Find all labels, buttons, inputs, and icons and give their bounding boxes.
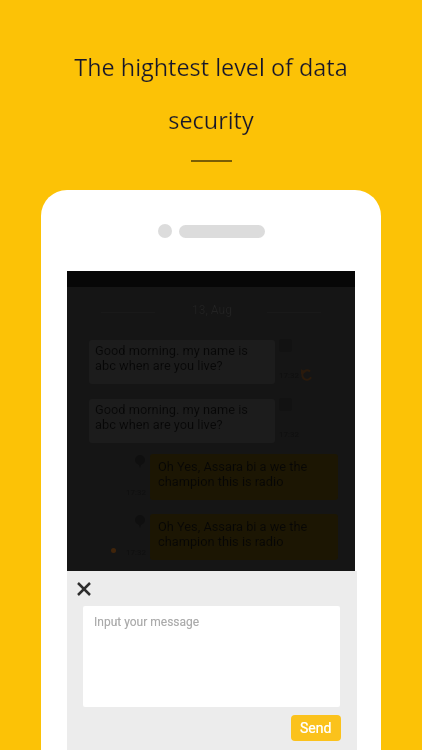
staticText: 13, Aug [192,303,232,317]
staticText: The hightest level of data [74,51,348,83]
button[interactable]: Good morning. my name is abc when are yo… [89,399,275,443]
staticText: Send [300,720,332,736]
other: Resend [301,369,313,381]
button[interactable]: Good morning. my name is abc when are yo… [89,340,275,384]
staticText: Input your message [94,615,200,629]
staticText: Good morning. my name is abc when are yo… [95,343,248,373]
button[interactable]: Send [291,715,341,741]
staticText: Good morning. my name is abc when are yo… [95,402,248,432]
button[interactable]: Oh Yes, Assara bi a we the champion this… [150,514,338,560]
staticText: Oh Yes, Assara bi a we the champion this… [158,519,308,549]
button[interactable]: Input your message [83,606,340,707]
button[interactable]: Close [70,575,98,603]
staticText: security [168,104,254,136]
button[interactable]: Oh Yes, Assara bi a we the champion this… [150,454,338,500]
staticText: Oh Yes, Assara bi a we the champion this… [158,459,308,489]
